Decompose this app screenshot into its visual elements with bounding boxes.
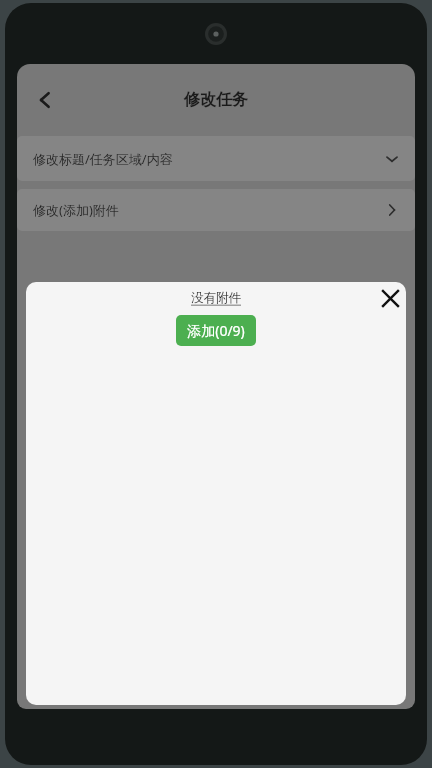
button[interactable]: 添加(0/9): [176, 315, 256, 346]
staticText: 修改(添加)附件: [33, 201, 119, 219]
button[interactable]: 返回: [23, 78, 67, 122]
button[interactable]: 关闭: [374, 282, 406, 314]
button[interactable]: 修改标题/任务区域/内容: [17, 136, 415, 181]
button[interactable]: 修改(添加)附件: [17, 189, 415, 231]
staticText: 没有附件: [191, 290, 241, 306]
staticText: 修改标题/任务区域/内容: [33, 150, 173, 168]
staticText: 添加(0/9): [187, 321, 245, 340]
staticText: 修改任务: [184, 90, 248, 110]
